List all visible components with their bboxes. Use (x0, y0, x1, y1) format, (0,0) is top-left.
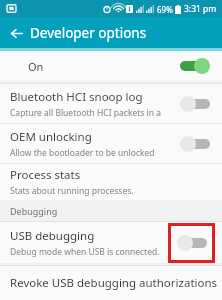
staticText: Capture all Bluetooth HCI packets in a f… (10, 107, 164, 119)
button[interactable]: Toggle Bluetooth HCI snoop log (180, 96, 210, 112)
staticText: Revoke USB debugging authorizations (10, 275, 218, 291)
staticText: Allow the bootloader to be unlocked (10, 147, 155, 159)
staticText: 69% (157, 4, 173, 15)
staticText: Stats about running processes. (10, 185, 134, 197)
staticText: 3:31 pm (184, 3, 217, 15)
staticText: Process stats (10, 167, 81, 183)
button[interactable]: Bluetooth HCI snoop log (0, 84, 222, 123)
button[interactable]: On (0, 51, 222, 81)
staticText: Debug mode when USB is connected. (10, 246, 160, 258)
staticText: OEM unlocking (10, 129, 92, 145)
button[interactable]: Back (5, 22, 27, 44)
button[interactable]: Revoke USB debugging authorizations (0, 266, 222, 300)
staticText: Debugging (10, 205, 58, 217)
staticText: Bluetooth HCI snoop log (10, 89, 143, 105)
button[interactable]: USB debugging (0, 222, 222, 263)
button[interactable]: Toggle USB debugging (168, 223, 215, 263)
staticText: USB debugging (10, 228, 95, 244)
button[interactable]: Process stats (0, 164, 222, 200)
button[interactable]: Toggle OEM unlocking (180, 136, 210, 152)
staticText: On (28, 59, 44, 74)
staticText: Developer options (30, 24, 147, 42)
button[interactable]: OEM unlocking (0, 124, 222, 163)
